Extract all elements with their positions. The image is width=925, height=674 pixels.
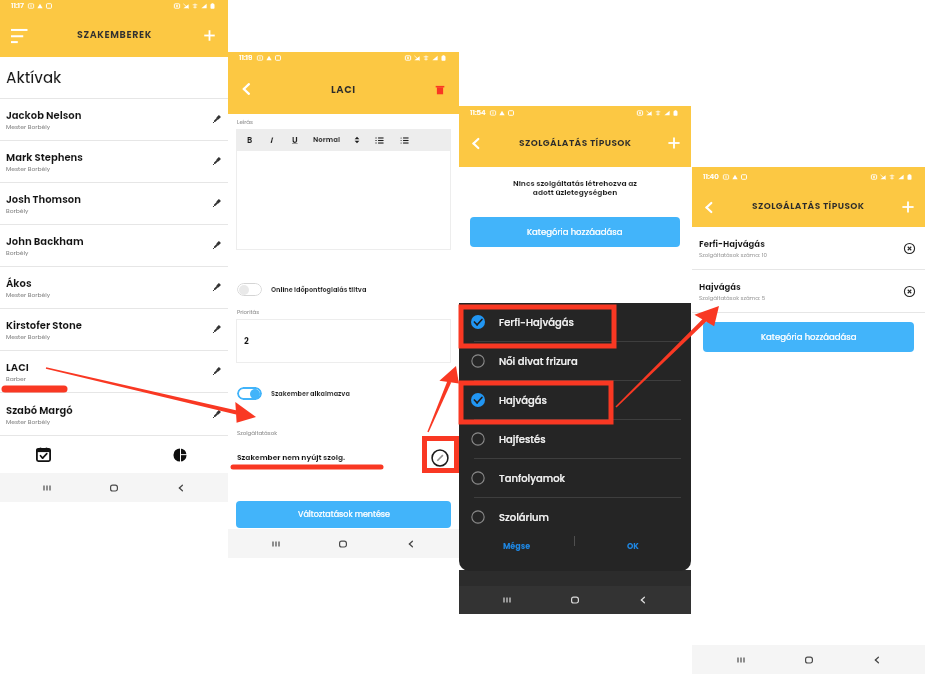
staticText: Ferfi-Hajvágás	[699, 238, 765, 250]
staticText: Barber	[6, 375, 26, 383]
button[interactable]: Változtatások mentése	[236, 501, 451, 528]
staticText: Mester Borbély	[6, 291, 51, 299]
staticText: U	[292, 135, 298, 146]
staticText: Borbély	[6, 207, 29, 215]
staticText: Mester Borbély	[6, 333, 51, 341]
button[interactable]: Szolárium	[459, 498, 691, 536]
staticText: Ákos	[6, 276, 32, 290]
staticText: Szolgáltatások száma: 5	[699, 294, 766, 302]
button[interactable]: Mégse	[459, 536, 574, 556]
staticText: 11:54	[470, 108, 486, 118]
staticText: LACI	[331, 82, 356, 96]
button[interactable]: Back	[843, 645, 911, 674]
staticText: 11:40	[703, 172, 719, 182]
button[interactable]: Remove	[901, 283, 917, 299]
button[interactable]: Home	[80, 473, 147, 502]
button[interactable]: Kategória hozzáadása	[470, 217, 680, 247]
staticText: Mégse	[503, 541, 531, 552]
button[interactable]: Add	[891, 190, 925, 224]
staticText: Szabó Margó	[6, 403, 73, 417]
button[interactable]: Home	[775, 645, 843, 674]
button[interactable]: Statistics	[161, 436, 199, 473]
button[interactable]: Ferfi-Hajvágás	[699, 227, 917, 269]
staticText: 11:19	[239, 53, 253, 63]
staticText: Leírás	[237, 118, 253, 126]
staticText: Kirstofer Stone	[6, 318, 82, 332]
button[interactable]: Ákos	[0, 267, 228, 309]
button[interactable]: Tanfolyamok	[459, 459, 691, 497]
button[interactable]: Szabó Margó	[0, 393, 228, 435]
button[interactable]	[237, 387, 262, 400]
staticText: John Backham	[6, 234, 84, 248]
button[interactable]: Női divat frizura	[459, 342, 691, 380]
staticText: Hajfestés	[499, 432, 546, 446]
staticText: Borbély	[6, 249, 29, 257]
staticText: Szakember nem nyújt szolg.	[237, 452, 346, 462]
button[interactable]: Back	[459, 126, 493, 160]
staticText: SZOLGÁLATÁS TÍPUSOK	[519, 137, 632, 150]
staticText: Ferfi-Hajvágás	[499, 315, 574, 329]
staticText: Női divat frizura	[499, 354, 578, 368]
button[interactable]: Kategória hozzáadása	[703, 322, 914, 352]
button[interactable]: Menu	[0, 16, 38, 54]
button[interactable]: Add	[657, 126, 691, 160]
staticText: Szakember alkalmazva	[271, 389, 350, 398]
staticText: Szolárium	[499, 510, 549, 524]
button[interactable]: Recents	[14, 473, 80, 502]
staticText: 2	[244, 335, 249, 347]
staticText: Hajvágás	[499, 393, 547, 407]
button[interactable]: Recents	[242, 529, 309, 558]
button[interactable]: Back	[228, 70, 266, 108]
button[interactable]: Recents	[473, 586, 541, 614]
button[interactable]: LACI	[0, 351, 228, 393]
button[interactable]: Back	[692, 190, 726, 224]
button[interactable]: Back	[377, 529, 445, 558]
staticText: Normal	[313, 135, 340, 145]
button[interactable]	[237, 283, 262, 296]
button[interactable]: Jackob Nelson	[0, 99, 228, 141]
staticText: SZOLGÁLATÁS TÍPUSOK	[752, 200, 865, 213]
button[interactable]: Back	[609, 586, 677, 614]
button[interactable]: OK	[575, 536, 691, 556]
staticText: Mester Borbély	[6, 123, 51, 131]
button[interactable]: Hajvágás	[459, 381, 691, 419]
button[interactable]: Home	[541, 586, 609, 614]
button[interactable]: Remove	[901, 240, 917, 256]
button[interactable]: John Backham	[0, 225, 228, 267]
button[interactable]: Calendar	[24, 436, 62, 473]
staticText: Kategória hozzáadása	[761, 331, 857, 343]
button[interactable]: Add	[190, 16, 228, 54]
staticText: Nincs szolgáltatás létrehozva az adott ü…	[459, 178, 691, 198]
staticText: Szolgáltatások száma: 10	[699, 251, 767, 259]
staticText: Változtatások mentése	[298, 509, 390, 520]
staticText: B	[247, 135, 253, 146]
button[interactable]: Back	[147, 473, 214, 502]
button[interactable]: Kirstofer Stone	[0, 309, 228, 351]
button[interactable]: Josh Thomson	[0, 183, 228, 225]
staticText: Mester Borbély	[6, 165, 51, 173]
button[interactable]: Ferfi-Hajvágás	[459, 303, 691, 341]
button[interactable]: Edit services	[430, 449, 450, 465]
staticText: Prioritás	[237, 308, 260, 316]
staticText: Mester Borbély	[6, 418, 51, 426]
staticText: OK	[627, 541, 639, 552]
button[interactable]: Home	[309, 529, 377, 558]
button[interactable]: Mark Stephens	[0, 141, 228, 183]
staticText: Kategória hozzáadása	[527, 226, 623, 238]
button[interactable]: Hajfestés	[459, 420, 691, 458]
staticText: Jackob Nelson	[6, 108, 82, 122]
staticText: I	[270, 135, 273, 146]
staticText: Mark Stephens	[6, 150, 83, 164]
staticText: Tanfolyamok	[499, 471, 566, 485]
staticText: Szolgáltatások	[237, 429, 278, 437]
staticText: SZAKEMBEREK	[77, 28, 152, 41]
button[interactable]: Delete	[421, 70, 459, 108]
staticText: 11:17	[11, 1, 24, 11]
staticText: Josh Thomson	[6, 192, 81, 206]
button[interactable]: Hajvágás	[699, 270, 917, 312]
staticText: Hajvágás	[699, 281, 741, 293]
staticText: Online időpontfoglalás tiltva	[271, 285, 367, 294]
staticText: Aktívak	[6, 67, 62, 88]
staticText: LACI	[6, 360, 29, 374]
button[interactable]: Recents	[706, 645, 775, 674]
